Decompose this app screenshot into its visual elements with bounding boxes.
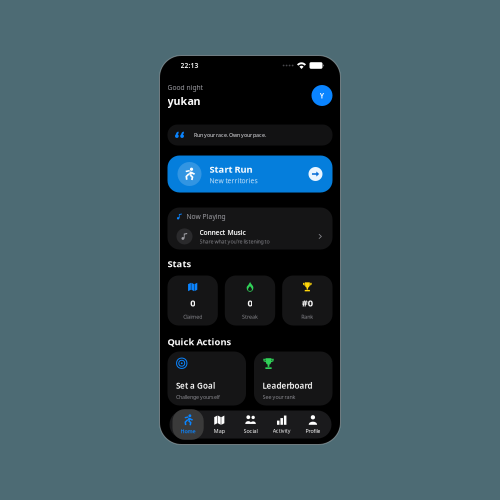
button[interactable]: Social — [235, 409, 266, 440]
staticText: New territories — [209, 176, 257, 185]
staticText: Good night — [167, 83, 202, 92]
staticText: Home — [181, 428, 196, 435]
button[interactable]: Profile — [297, 409, 328, 440]
staticText: Social — [243, 427, 257, 435]
button[interactable]: Activity — [266, 410, 297, 439]
staticText: #0 — [302, 297, 313, 309]
staticText: 22:13 — [180, 61, 198, 70]
staticText: Rank — [301, 313, 313, 320]
staticText: Quick Actions — [167, 335, 231, 348]
staticText: Set a Goal — [176, 380, 215, 391]
staticText: Challenge yourself — [176, 393, 220, 400]
button[interactable]: Account — [311, 85, 332, 106]
button[interactable]: Home — [172, 409, 204, 440]
staticText: 0 — [247, 297, 252, 309]
staticText: Start Run — [209, 163, 252, 175]
staticText: Streak — [242, 313, 258, 320]
staticText: Now Playing — [186, 212, 225, 221]
staticText: 0 — [190, 297, 195, 309]
staticText: Leaderboard — [262, 380, 312, 391]
button[interactable]: Leaderboard — [254, 351, 332, 405]
button[interactable]: 0 — [225, 275, 275, 325]
staticText: Profile — [305, 427, 320, 435]
button[interactable]: Start Run — [167, 155, 332, 192]
staticText: Run your race. Own your pace. — [194, 131, 266, 139]
button[interactable]: Set a Goal — [167, 351, 246, 405]
staticText: See your rank — [262, 393, 295, 400]
staticText: yukan — [167, 94, 200, 108]
staticText: Claimed — [183, 313, 202, 320]
button[interactable]: Map — [204, 409, 235, 440]
button[interactable]: Connect Music — [176, 228, 323, 245]
button[interactable]: #0 — [282, 275, 332, 325]
staticText: Y — [319, 90, 324, 101]
staticText: Activity — [273, 427, 291, 434]
staticText: Connect Music — [199, 228, 245, 237]
staticText: Share what you're listening to — [199, 238, 269, 245]
staticText: Stats — [167, 257, 191, 270]
button[interactable]: 0 — [167, 275, 218, 325]
staticText: Map — [214, 427, 225, 435]
